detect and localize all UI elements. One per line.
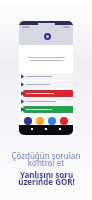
button[interactable]: Profile xyxy=(44,33,51,40)
button[interactable]: Action xyxy=(48,117,56,125)
button[interactable] xyxy=(21,90,72,97)
button[interactable]: Action xyxy=(24,117,32,125)
button[interactable] xyxy=(21,106,72,113)
button[interactable] xyxy=(21,98,72,105)
button[interactable] xyxy=(21,73,72,80)
button[interactable]: Action xyxy=(36,117,44,125)
button[interactable]: Action xyxy=(60,117,68,125)
staticText: Çözdüğün soruları kontrol et xyxy=(11,150,81,168)
button[interactable] xyxy=(21,81,72,88)
staticText: Yanlışını soru üzerinde GÖR! xyxy=(18,169,75,188)
